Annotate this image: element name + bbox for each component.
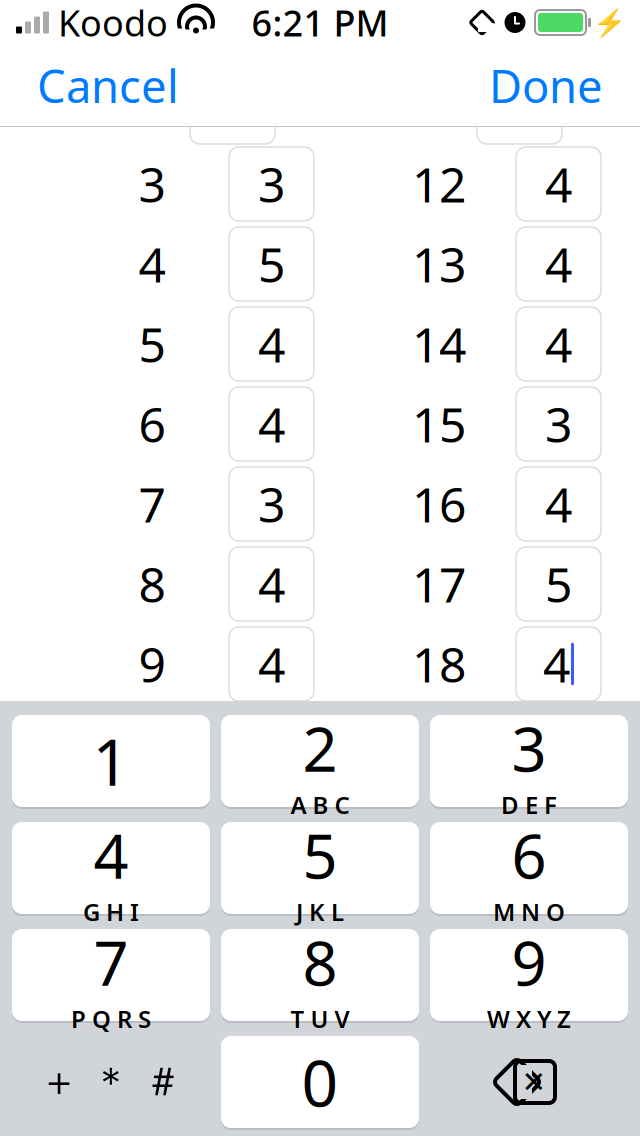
- staticText: 3: [511, 707, 546, 789]
- button[interactable]: Cancel: [0, 45, 193, 126]
- staticText: 9: [511, 921, 546, 1003]
- staticText: 17: [412, 552, 466, 616]
- button[interactable]: 2: [221, 715, 419, 807]
- staticText: W X Y Z: [487, 1003, 571, 1035]
- staticText: 6:21 PM: [251, 0, 388, 46]
- staticText: 4: [258, 312, 285, 376]
- button[interactable]: Done: [475, 45, 640, 126]
- staticText: 3: [545, 392, 572, 456]
- staticText: 4: [543, 632, 570, 696]
- staticText: 4: [545, 152, 572, 216]
- staticText: G H I: [83, 896, 139, 928]
- staticText: ＋ ＊ ＃: [39, 1057, 183, 1106]
- staticText: 4: [258, 632, 285, 696]
- staticText: 16: [412, 472, 466, 536]
- button[interactable]: 9: [430, 929, 628, 1021]
- staticText: Done: [489, 55, 603, 116]
- staticText: 15: [412, 392, 466, 456]
- button[interactable]: 7: [12, 929, 210, 1021]
- staticText: Koodo: [58, 0, 168, 46]
- button[interactable]: 8: [221, 929, 419, 1021]
- staticText: 8: [138, 552, 165, 616]
- staticText: 5: [138, 312, 165, 376]
- staticText: 4: [258, 552, 285, 616]
- staticText: 12: [412, 152, 466, 216]
- staticText: 4: [93, 814, 128, 896]
- staticText: 14: [412, 312, 466, 376]
- staticText: 6: [138, 392, 165, 456]
- staticText: Cancel: [37, 55, 179, 116]
- staticText: 7: [138, 472, 165, 536]
- button[interactable]: 6: [430, 822, 628, 914]
- button[interactable]: 4: [12, 822, 210, 914]
- staticText: 18: [412, 632, 466, 696]
- staticText: 8: [302, 921, 337, 1003]
- staticText: M N O: [493, 896, 565, 928]
- button[interactable]: 0: [221, 1036, 419, 1128]
- staticText: 4: [138, 232, 165, 296]
- staticText: T U V: [290, 1003, 349, 1035]
- staticText: 13: [412, 232, 466, 296]
- staticText: ✕: [521, 1065, 546, 1099]
- staticText: 5: [545, 552, 572, 616]
- staticText: 5: [258, 232, 285, 296]
- button[interactable]: 1: [12, 715, 210, 807]
- button[interactable]: Delete: [430, 1036, 628, 1128]
- staticText: 3: [258, 152, 285, 216]
- button[interactable]: 5: [221, 822, 419, 914]
- staticText: 7: [93, 921, 128, 1003]
- staticText: 6: [511, 814, 546, 896]
- staticText: 4: [545, 312, 572, 376]
- staticText: P Q R S: [71, 1003, 151, 1035]
- staticText: J K L: [296, 896, 344, 928]
- staticText: 4: [545, 472, 572, 536]
- staticText: 5: [302, 814, 337, 896]
- staticText: A B C: [290, 789, 349, 821]
- staticText: 1: [92, 718, 129, 803]
- staticText: 4: [258, 392, 285, 456]
- button[interactable]: 3: [430, 715, 628, 807]
- staticText: 3: [138, 152, 165, 216]
- staticText: 2: [302, 707, 337, 789]
- staticText: ⚡: [593, 7, 626, 38]
- staticText: 4: [545, 232, 572, 296]
- staticText: D E F: [501, 789, 557, 821]
- button[interactable]: Symbols: [12, 1036, 210, 1128]
- staticText: 0: [301, 1039, 338, 1124]
- staticText: 9: [138, 632, 165, 696]
- staticText: 3: [258, 472, 285, 536]
